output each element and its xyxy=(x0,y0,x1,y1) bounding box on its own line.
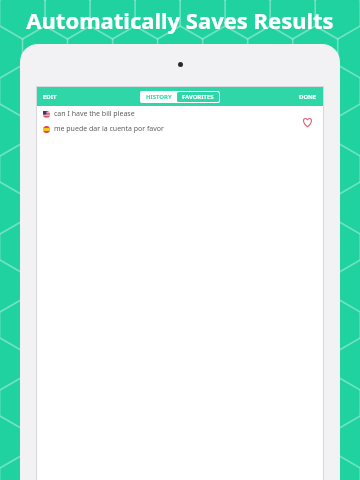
staticText: Automatically Saves Results xyxy=(26,5,334,35)
staticText: EDIT xyxy=(43,93,57,101)
staticText: HISTORY xyxy=(146,93,172,101)
staticText: me puede dar la cuenta por favor xyxy=(54,124,164,134)
button[interactable]: can I have the bill please xyxy=(37,106,323,137)
button[interactable]: Favorite xyxy=(299,114,315,130)
staticText: can I have the bill please xyxy=(54,109,135,119)
button[interactable]: HISTORY xyxy=(146,92,172,102)
button[interactable]: DONE xyxy=(299,87,317,106)
button[interactable]: FAVORITES xyxy=(182,92,214,102)
staticText: FAVORITES xyxy=(182,93,214,101)
button[interactable]: EDIT xyxy=(43,87,57,106)
staticText: DONE xyxy=(299,93,317,101)
